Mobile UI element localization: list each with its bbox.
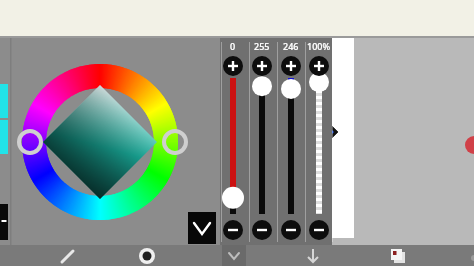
button[interactable]: Collapse colour panel <box>0 0 474 266</box>
button[interactable]: Hide toolbar <box>222 245 246 266</box>
button[interactable]: Layers <box>384 245 412 266</box>
button[interactable]: Colour <box>132 245 162 266</box>
button[interactable]: Import <box>300 245 328 266</box>
button[interactable]: Collapse colour panel <box>186 210 218 246</box>
button[interactable]: Brush <box>54 245 84 266</box>
